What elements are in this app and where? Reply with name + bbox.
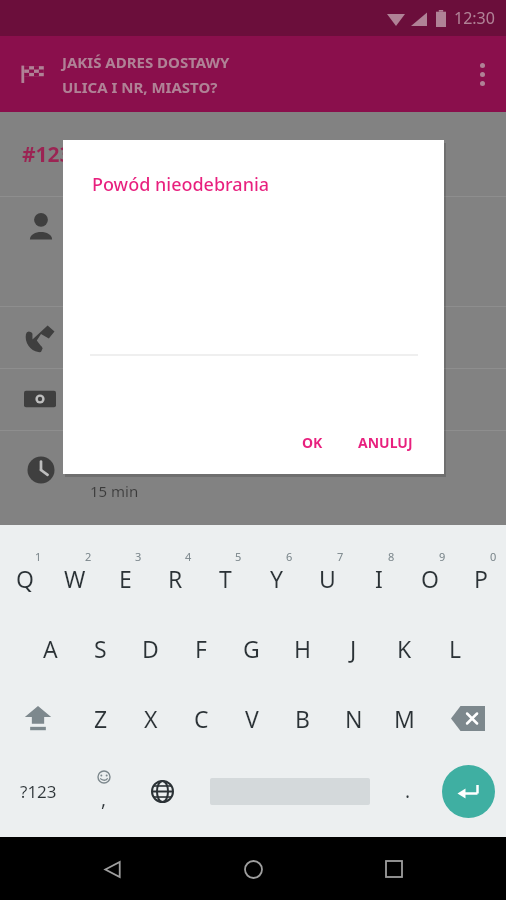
staticText: D bbox=[142, 633, 159, 664]
button[interactable]: K bbox=[379, 617, 430, 679]
button[interactable]: Y bbox=[251, 547, 302, 609]
button[interactable]: OK bbox=[291, 426, 334, 459]
button[interactable]: Change language bbox=[131, 757, 193, 825]
staticText: 7 bbox=[337, 549, 344, 564]
staticText: X bbox=[144, 703, 158, 734]
staticText: Y bbox=[270, 563, 284, 594]
staticText: 8 bbox=[388, 549, 395, 564]
button[interactable]: C bbox=[176, 687, 226, 749]
staticText: 3 bbox=[135, 549, 142, 564]
staticText: W bbox=[64, 563, 86, 594]
staticText: Powód nieodebrania bbox=[92, 172, 270, 197]
staticText: A bbox=[43, 633, 58, 664]
staticText: B bbox=[295, 703, 310, 734]
button[interactable]: Destination bbox=[14, 54, 54, 94]
staticText: 6 bbox=[286, 549, 293, 564]
staticText: 4 bbox=[185, 549, 192, 564]
button[interactable]: P bbox=[455, 547, 506, 609]
button[interactable]: O bbox=[404, 547, 455, 609]
staticText: JAKIŚ ADRES DOSTAWY bbox=[62, 52, 230, 72]
button[interactable]: Q bbox=[0, 547, 50, 609]
button[interactable]: D bbox=[125, 617, 175, 679]
staticText: S bbox=[94, 633, 107, 664]
button[interactable]: U bbox=[302, 547, 353, 609]
staticText: 9 bbox=[439, 549, 446, 564]
button[interactable]: R bbox=[150, 547, 200, 609]
staticText: 2 bbox=[85, 549, 92, 564]
staticText: ?123 bbox=[20, 780, 57, 803]
staticText: 0 bbox=[490, 549, 497, 564]
staticText: ULICA I NR, MIASTO? bbox=[62, 77, 218, 97]
staticText: 15 min bbox=[90, 481, 139, 501]
button[interactable]: Home bbox=[224, 840, 282, 898]
button[interactable]: ANULUJ bbox=[347, 426, 424, 459]
staticText: Q bbox=[16, 563, 34, 594]
button[interactable]: E bbox=[100, 547, 150, 609]
staticText: . bbox=[405, 778, 411, 804]
staticText: T bbox=[219, 563, 232, 594]
button[interactable]: S bbox=[75, 617, 125, 679]
button[interactable]: Space bbox=[193, 757, 386, 825]
staticText: C bbox=[194, 703, 209, 734]
button[interactable]: Z bbox=[76, 687, 126, 749]
staticText: M bbox=[394, 703, 415, 734]
button[interactable]: Backspace bbox=[430, 687, 506, 749]
staticText: G bbox=[243, 633, 260, 664]
staticText: N bbox=[345, 703, 363, 734]
button[interactable]: B bbox=[277, 687, 328, 749]
staticText: F bbox=[195, 633, 207, 664]
button[interactable]: A bbox=[25, 617, 75, 679]
staticText: P bbox=[474, 563, 488, 594]
button[interactable]: L bbox=[430, 617, 481, 679]
staticText: 5 bbox=[235, 549, 242, 564]
staticText: R bbox=[168, 563, 183, 594]
button[interactable]: . bbox=[386, 757, 430, 825]
button[interactable]: G bbox=[226, 617, 277, 679]
button[interactable]: Back bbox=[83, 840, 141, 898]
staticText: L bbox=[449, 633, 462, 664]
staticText: OK bbox=[302, 433, 323, 452]
button[interactable]: X bbox=[126, 687, 176, 749]
button[interactable]: N bbox=[328, 687, 379, 749]
button[interactable]: Recent apps bbox=[365, 840, 423, 898]
button[interactable]: More options bbox=[458, 36, 506, 112]
staticText: H bbox=[294, 633, 312, 664]
staticText: J bbox=[350, 633, 357, 664]
button[interactable]: I bbox=[353, 547, 404, 609]
button[interactable]: M bbox=[379, 687, 430, 749]
button[interactable]: ?123 bbox=[0, 757, 76, 825]
button[interactable]: Shift bbox=[0, 687, 76, 749]
staticText: U bbox=[319, 563, 336, 594]
staticText: Z bbox=[94, 703, 108, 734]
button[interactable]: Enter bbox=[430, 757, 506, 825]
staticText: I bbox=[375, 563, 383, 594]
staticText: ANULUJ bbox=[358, 433, 413, 452]
staticText: #12345 bbox=[22, 140, 96, 169]
button[interactable]: H bbox=[277, 617, 328, 679]
staticText: O bbox=[421, 563, 439, 594]
staticText: 1 bbox=[35, 549, 42, 564]
button[interactable]: J bbox=[328, 617, 379, 679]
staticText: K bbox=[397, 633, 412, 664]
staticText: 12:30 bbox=[454, 7, 495, 29]
button[interactable]: Emoji and comma bbox=[76, 757, 131, 825]
button[interactable]: F bbox=[175, 617, 226, 679]
staticText: E bbox=[119, 563, 132, 594]
button[interactable]: V bbox=[226, 687, 277, 749]
button[interactable]: T bbox=[200, 547, 251, 609]
staticText: , bbox=[101, 786, 107, 812]
staticText: V bbox=[245, 703, 259, 734]
button[interactable]: W bbox=[50, 547, 100, 609]
